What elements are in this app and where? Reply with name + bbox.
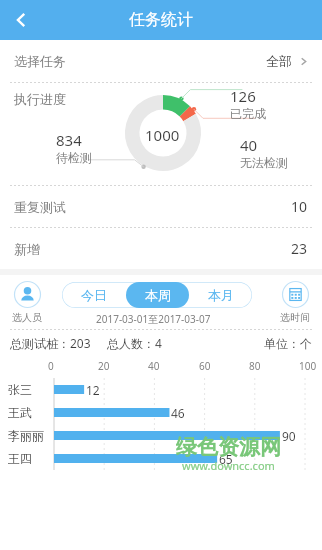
button[interactable]: 选择任务	[0, 40, 322, 82]
staticText: 2017-03-01至2017-03-07	[96, 312, 211, 326]
button[interactable]: 新增	[0, 228, 322, 269]
staticText: 本周	[145, 287, 171, 303]
staticText: 无法检测	[240, 155, 288, 170]
staticText: 单位：个	[264, 336, 312, 351]
staticText: 90	[282, 428, 296, 444]
staticText: 12	[86, 382, 100, 398]
staticText: 任务统计	[129, 10, 193, 30]
staticText: 张三	[8, 382, 32, 397]
staticText: 绿色资源网	[176, 434, 281, 460]
staticText: 40	[240, 135, 258, 155]
staticText: 重复测试	[14, 199, 66, 215]
button[interactable]: 选时间	[280, 281, 310, 324]
staticText: 选择任务	[14, 53, 66, 69]
staticText: 40	[148, 359, 160, 373]
button[interactable]: 本月	[189, 282, 252, 308]
button[interactable]: Back	[0, 0, 42, 40]
staticText: 总测试桩：203	[10, 335, 91, 351]
staticText: 10	[291, 197, 308, 216]
staticText: 执行进度	[14, 91, 66, 107]
staticText: 0	[48, 359, 54, 373]
staticText: 1000	[145, 125, 180, 145]
staticText: 总人数：4	[107, 335, 162, 351]
staticText: 60	[199, 359, 211, 373]
staticText: 80	[249, 359, 261, 373]
staticText: 46	[171, 405, 185, 421]
staticText: 今日	[81, 287, 107, 303]
staticText: 100	[299, 359, 317, 373]
button[interactable]: 重复测试	[0, 186, 322, 227]
staticText: www.downcc.com	[182, 458, 275, 473]
staticText: 834	[56, 130, 82, 150]
button[interactable]: 本周	[126, 282, 189, 308]
staticText: 王武	[8, 405, 32, 420]
staticText: 65	[219, 451, 233, 467]
staticText: 选时间	[280, 311, 310, 324]
staticText: 全部	[266, 53, 292, 69]
staticText: 23	[291, 239, 308, 258]
staticText: 本月	[208, 287, 234, 303]
button[interactable]: 选人员	[12, 281, 42, 324]
staticText: 已完成	[230, 106, 266, 121]
staticText: 选人员	[12, 311, 42, 324]
staticText: 126	[230, 86, 256, 106]
staticText: 李丽丽	[8, 428, 44, 443]
staticText: 王四	[8, 451, 32, 466]
staticText: 20	[98, 359, 110, 373]
staticText: 新增	[14, 241, 40, 257]
button[interactable]: 今日	[62, 282, 126, 308]
staticText: 待检测	[56, 150, 92, 165]
